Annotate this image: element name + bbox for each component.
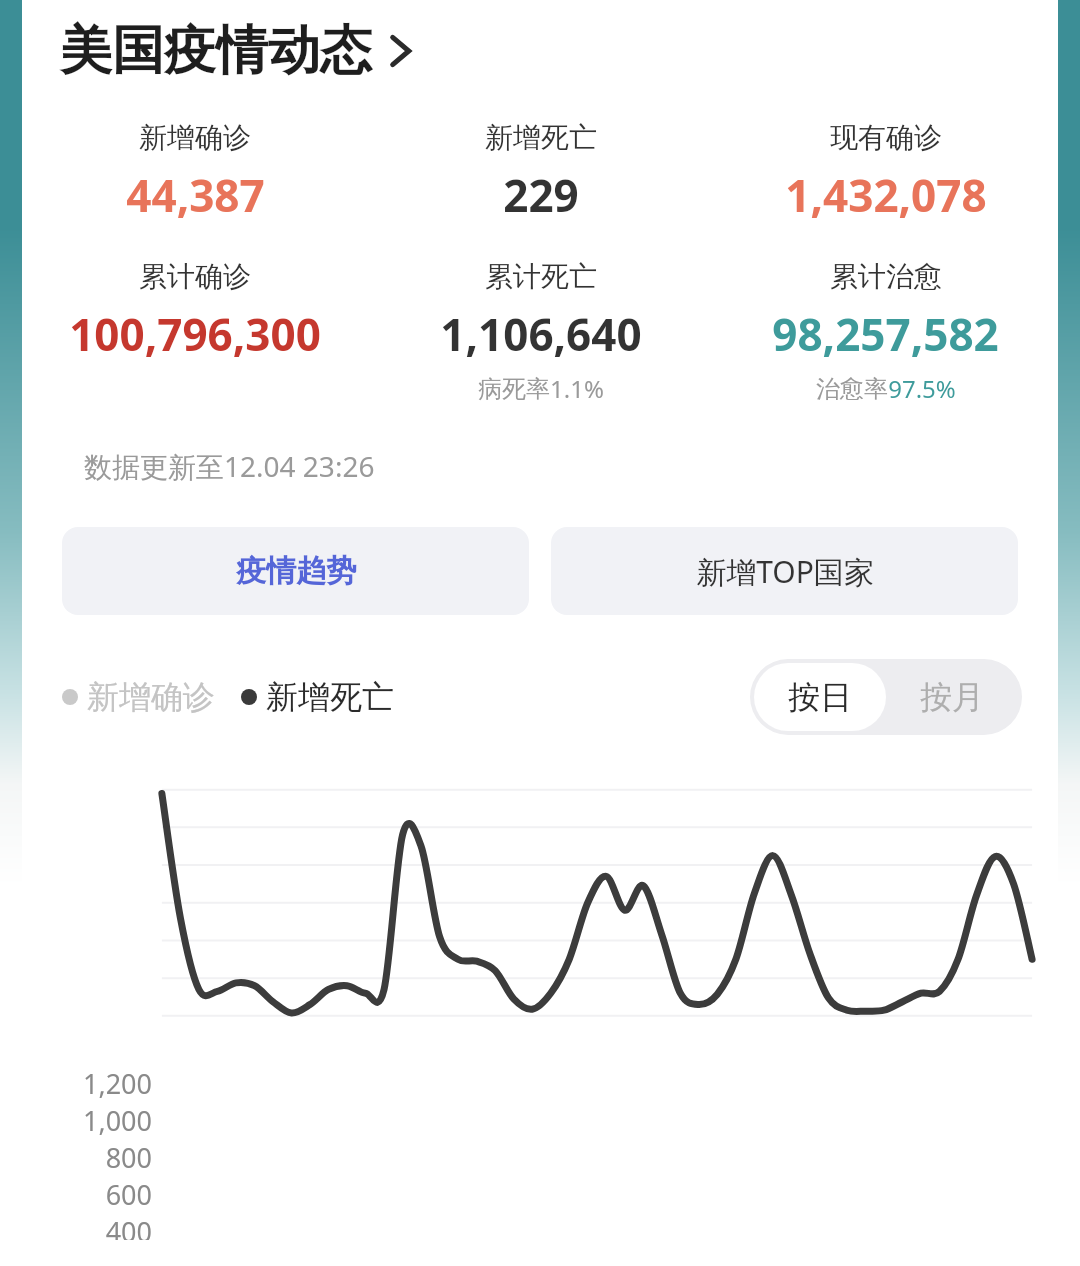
staticText: 800 (105, 1139, 152, 1176)
staticText: 1.1% (550, 372, 604, 405)
staticText: 累计确诊 (139, 259, 251, 294)
staticText: 新增死亡 (266, 677, 394, 717)
button[interactable]: 按月 (886, 663, 1018, 731)
button[interactable]: 美国疫情动态 (60, 18, 414, 84)
staticText: 累计死亡 (485, 259, 597, 294)
button[interactable]: 按日 (754, 663, 886, 731)
staticText: 治愈率 (816, 374, 888, 404)
staticText: 1,000 (82, 1102, 152, 1139)
staticText: 新增确诊 (139, 120, 251, 155)
staticText: 98,257,582 (772, 304, 999, 364)
staticText: 44,387 (126, 165, 265, 225)
staticText: 按日 (788, 677, 852, 717)
staticText: 1,432,078 (785, 165, 987, 225)
staticText: 数据更新至12.04 23:26 (84, 447, 375, 485)
button[interactable]: 新增确诊 (62, 677, 215, 717)
staticText: 疫情趋势 (236, 552, 356, 590)
staticText: 97.5% (888, 372, 956, 405)
staticText: 美国疫情动态 (60, 18, 372, 84)
staticText: 100,796,300 (69, 304, 321, 364)
staticText: 1,200 (82, 1065, 152, 1102)
staticText: 新增死亡 (485, 120, 597, 155)
staticText: 1,106,640 (440, 304, 642, 364)
staticText: 400 (105, 1213, 152, 1240)
staticText: 新增确诊 (87, 677, 215, 717)
staticText: 按月 (920, 677, 984, 717)
staticText: 新增TOP国家 (696, 551, 874, 592)
button[interactable]: 新增死亡 (241, 677, 394, 717)
staticText: 600 (105, 1176, 152, 1213)
button[interactable]: 新增TOP国家 (551, 527, 1018, 615)
button[interactable]: 疫情趋势 (62, 527, 529, 615)
staticText: 病死率 (478, 374, 550, 404)
staticText: 229 (503, 165, 579, 225)
staticText: 累计治愈 (830, 259, 942, 294)
staticText: 现有确诊 (830, 120, 942, 155)
